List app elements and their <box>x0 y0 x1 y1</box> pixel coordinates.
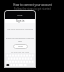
staticText: Sign in <box>16 19 25 23</box>
staticText: Open <box>18 45 23 48</box>
staticText: Follow the steps to get started <box>14 7 51 11</box>
staticText: Enter the verification code we sent <box>6 37 34 43</box>
staticText: Use your phone to continue <box>6 28 34 31</box>
staticText: Or scan the QR code <box>6 51 34 54</box>
staticText: ACME <box>17 14 23 17</box>
button[interactable]: Keyboard <box>5 53 35 67</box>
staticText: How to connect your account <box>13 3 52 7</box>
button[interactable]: Open <box>13 44 28 49</box>
